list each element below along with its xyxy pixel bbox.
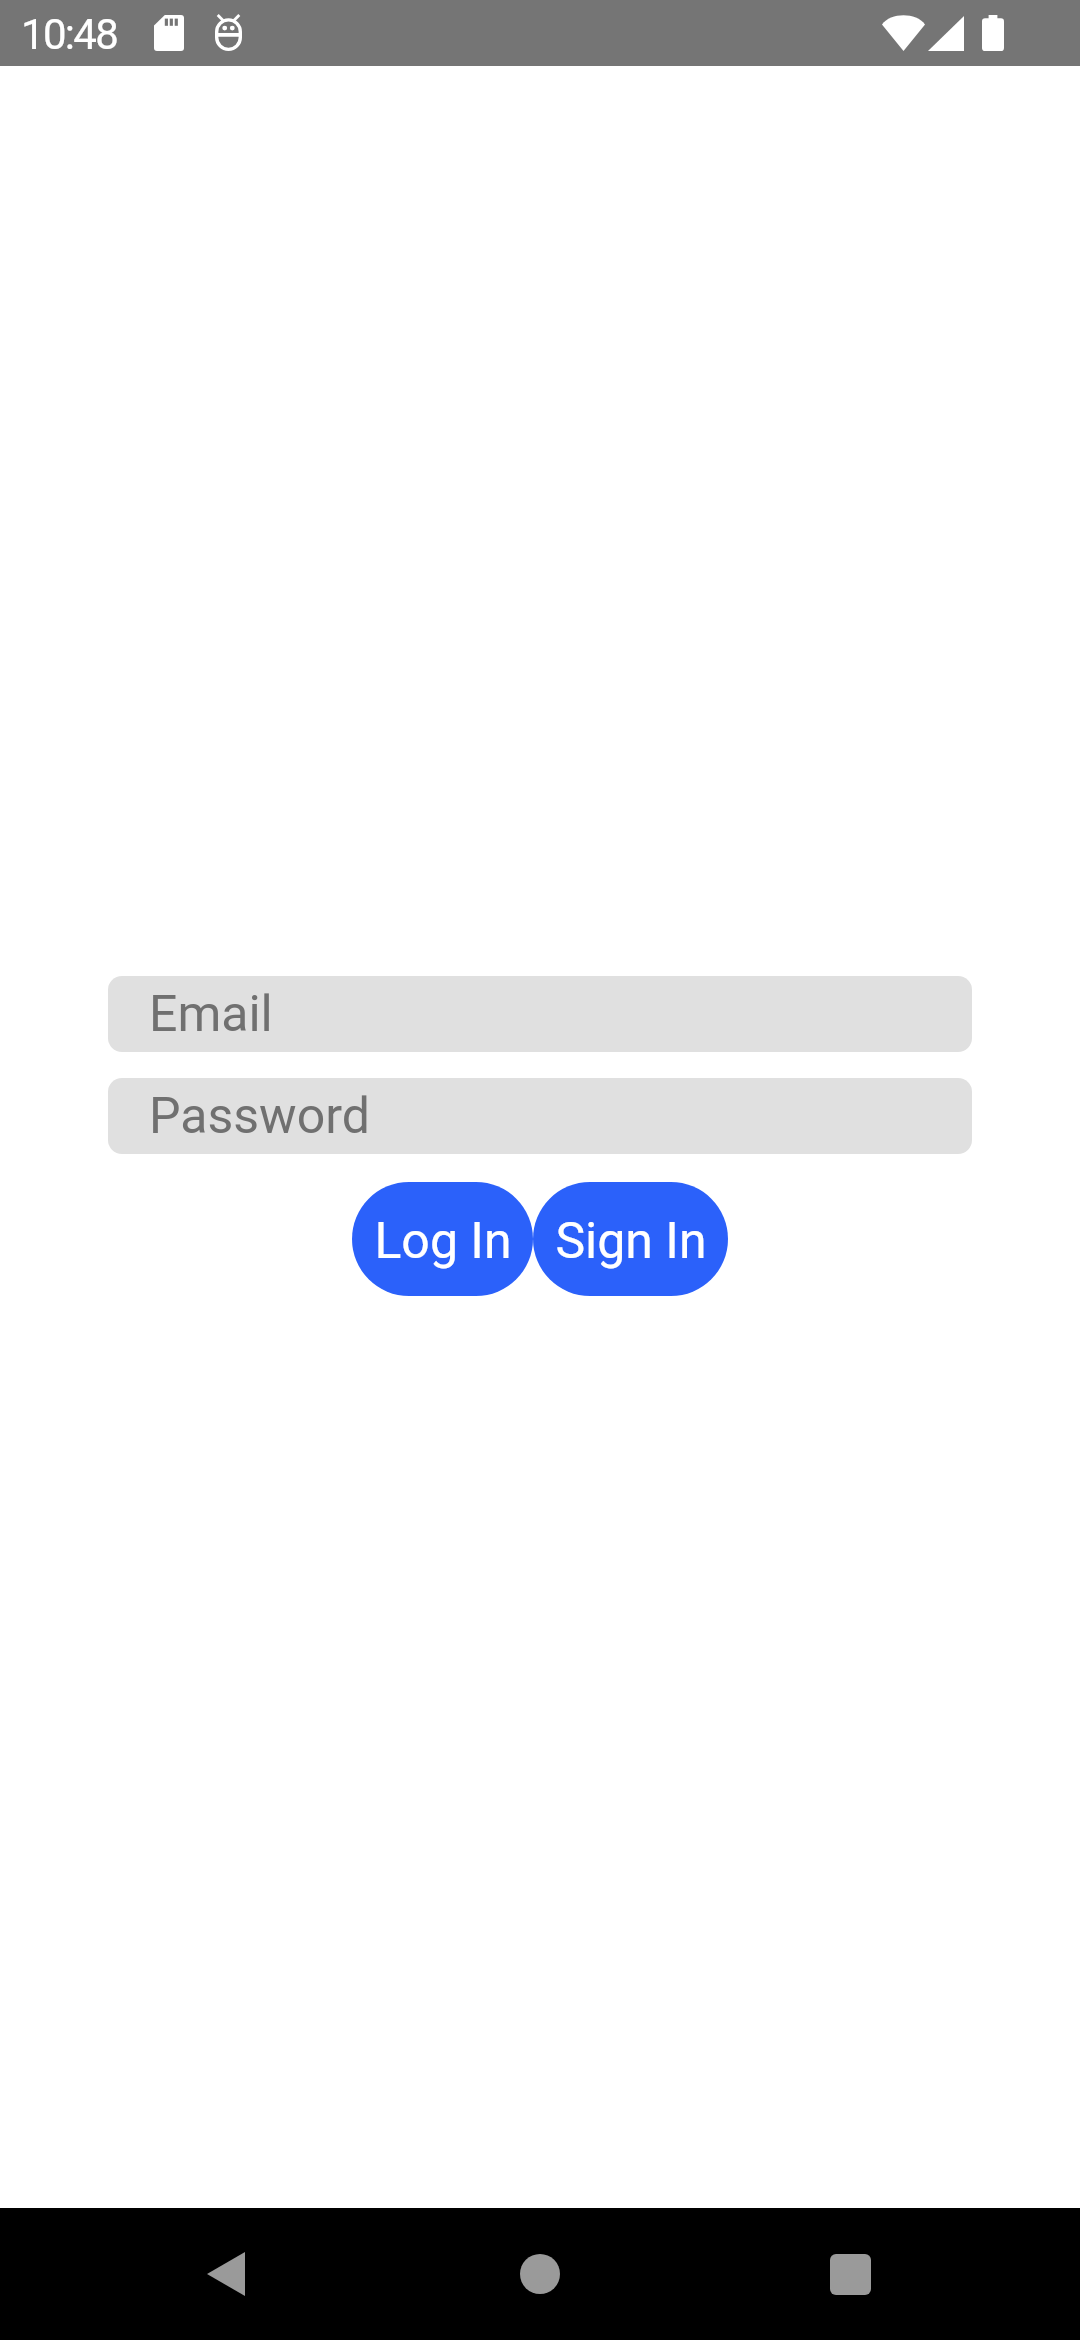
- button[interactable]: Email: [108, 976, 972, 1052]
- staticText: Email: [149, 985, 273, 1044]
- staticText: 10:48: [21, 10, 118, 59]
- button[interactable]: Home: [474, 2208, 606, 2340]
- staticText: Password: [149, 1087, 370, 1146]
- button[interactable]: Sign In: [533, 1182, 728, 1296]
- button[interactable]: Log In: [352, 1182, 533, 1296]
- button[interactable]: Back: [160, 2208, 292, 2340]
- staticText: Sign In: [555, 1212, 707, 1271]
- button[interactable]: Recent apps: [784, 2208, 916, 2340]
- staticText: Log In: [374, 1212, 512, 1271]
- button[interactable]: Password: [108, 1078, 972, 1154]
